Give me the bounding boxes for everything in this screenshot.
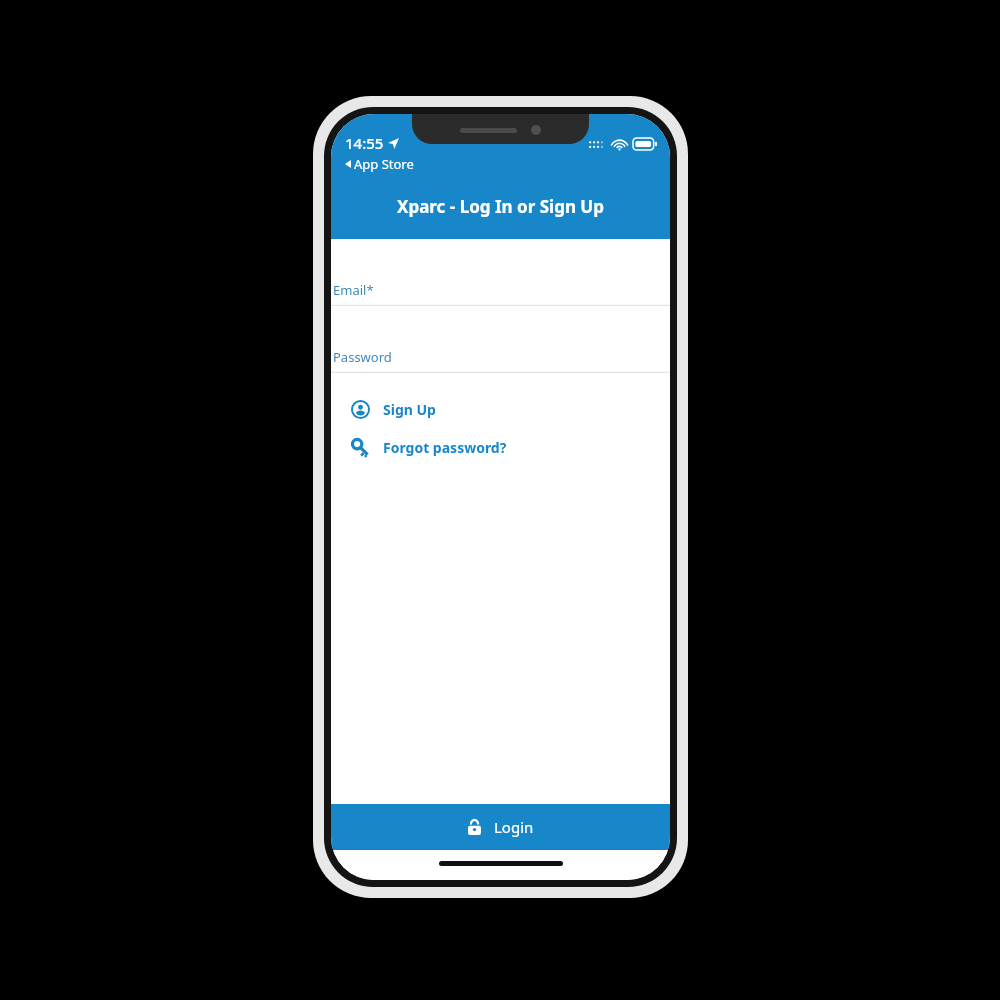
- staticText: App Store: [354, 155, 414, 173]
- staticText: Xparc - Log In or Sign Up: [397, 195, 604, 218]
- staticText: Password: [333, 348, 392, 366]
- other: Lock: [468, 819, 481, 835]
- staticText: Forgot password?: [383, 438, 507, 457]
- staticText: Email*: [333, 281, 374, 299]
- button[interactable]: Password: [331, 306, 670, 373]
- button[interactable]: Email*: [331, 239, 670, 306]
- button[interactable]: Lock: [331, 804, 670, 850]
- button[interactable]: Sign Up: [331, 395, 670, 423]
- staticText: 14:55: [345, 133, 384, 153]
- staticText: Sign Up: [383, 400, 436, 419]
- staticText: Login: [494, 817, 534, 837]
- button[interactable]: Forgot password?: [331, 433, 670, 461]
